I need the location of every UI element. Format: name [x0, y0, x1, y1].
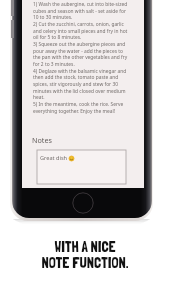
staticText: 5) In the meantime, cook the rice. Serve [33, 101, 124, 108]
staticText: Notes [32, 135, 52, 145]
staticText: WITH A NICE NOTE FUNCTION. [41, 238, 129, 272]
staticText: 10 to 30 minutes. [33, 14, 73, 21]
staticText: and celery into small pieces and fry in … [33, 28, 128, 35]
staticText: 3) Squeeze out the aubergine pieces and [33, 41, 126, 48]
button[interactable]: Home [72, 192, 94, 214]
staticText: then add the stock, tomato paste and [33, 74, 119, 81]
staticText: cubes and season with salt - set aside f… [33, 8, 126, 15]
staticText: everything together. Enjoy the meal! [33, 108, 115, 115]
staticText: 2) Cut the zucchini, carrots, onion, gar… [33, 21, 124, 28]
staticText: Great dish [40, 154, 69, 162]
staticText: for 2 to 3 minutes. [33, 61, 75, 68]
staticText: heat. [33, 94, 45, 101]
staticText: 1) Wash the aubergine, cut into bite-siz… [33, 1, 128, 8]
staticText: the pan with the other vegetables and fr… [33, 54, 128, 61]
staticText: 4) Deglaze with the balsamic vinegar and [33, 68, 127, 75]
staticText: spices, stir vigorously and stew for 30 [33, 81, 118, 88]
staticText: minutes with the lid closed over medium [33, 88, 126, 95]
staticText: pour away the water - add the pieces to [33, 48, 123, 55]
staticText: oil for 5 to 8 minutes. [33, 34, 82, 41]
button[interactable]: Great dish [37, 150, 126, 184]
